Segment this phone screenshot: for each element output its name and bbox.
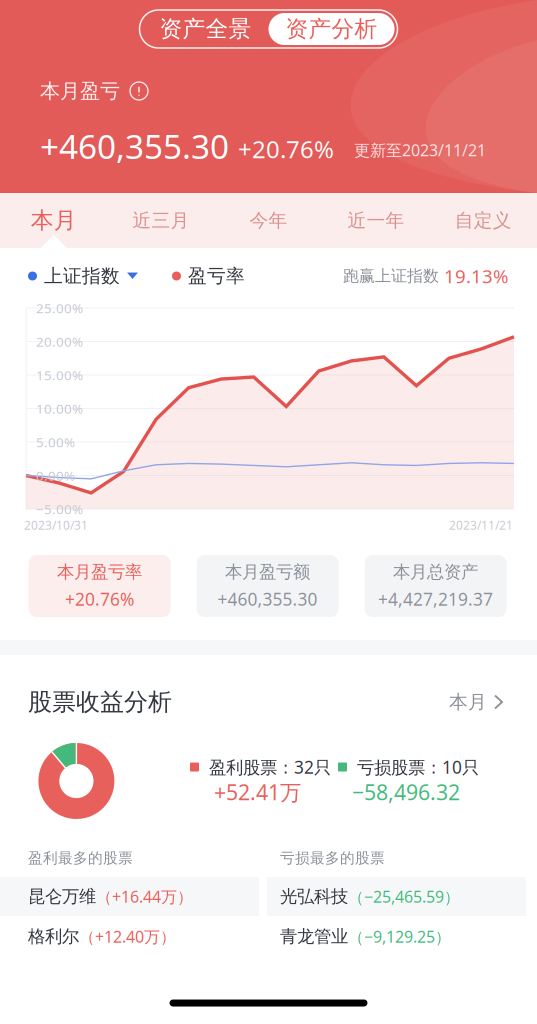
button[interactable]: 资产分析 xyxy=(268,13,394,45)
staticText: 本月 xyxy=(31,207,77,234)
button[interactable]: 本月盈亏率 xyxy=(29,555,171,617)
staticText: 昆仑万维 xyxy=(28,886,96,907)
button[interactable]: 光弘科技 xyxy=(267,877,526,916)
staticText: +20.76% xyxy=(65,588,134,611)
staticText: 本月盈亏 xyxy=(40,79,120,103)
button[interactable]: 上证指数 xyxy=(28,264,138,287)
staticText: 本月总资产 xyxy=(393,561,478,583)
staticText: 20.00% xyxy=(36,333,83,350)
staticText: 盈亏率 xyxy=(188,264,245,287)
staticText: 盈利股票：32只 xyxy=(199,755,331,778)
staticText: +4,427,219.37 xyxy=(378,588,493,611)
staticText: （+12.40万） xyxy=(79,926,176,947)
staticText: 股票收益分析 xyxy=(28,687,172,717)
staticText: +460,355.30 xyxy=(40,124,229,168)
staticText: 10.00% xyxy=(36,400,83,417)
button[interactable]: 自定义 xyxy=(430,193,537,248)
staticText: 25.00% xyxy=(36,299,83,317)
staticText: 光弘科技 xyxy=(280,886,348,907)
staticText: 2023/11/21 xyxy=(449,517,513,533)
staticText: +460,355.30 xyxy=(218,588,318,611)
staticText: 跑赢上证指数 xyxy=(343,266,439,286)
staticText: 5.00% xyxy=(36,433,75,451)
button[interactable]: 近一年 xyxy=(322,193,430,248)
staticText: 盈利最多的股票 xyxy=(28,849,133,867)
staticText: 近三月 xyxy=(133,209,190,232)
button[interactable]: 本月盈亏额 xyxy=(197,555,339,617)
staticText: 格利尔 xyxy=(28,926,79,947)
staticText: 更新至2023/11/21 xyxy=(354,139,486,161)
staticText: 2023/10/31 xyxy=(24,517,88,533)
staticText: 自定义 xyxy=(455,209,512,232)
button[interactable]: 昆仑万维 xyxy=(0,877,259,916)
staticText: 0.00% xyxy=(36,467,75,484)
staticText: 资产分析 xyxy=(285,15,377,43)
staticText: 本月盈亏额 xyxy=(225,561,310,583)
button[interactable]: 本月 xyxy=(0,193,107,248)
button[interactable]: 格利尔 xyxy=(0,917,259,956)
staticText: 15.00% xyxy=(36,366,83,384)
staticText: 亏损最多的股票 xyxy=(280,849,385,867)
staticText: −58,496.32 xyxy=(352,778,460,806)
button[interactable]: 近三月 xyxy=(107,193,215,248)
button[interactable]: 本月 xyxy=(364,686,504,718)
staticText: （−9,129.25） xyxy=(348,926,451,947)
staticText: 19.13% xyxy=(439,264,509,288)
staticText: 上证指数 xyxy=(44,264,120,287)
staticText: （+16.44万） xyxy=(96,886,193,907)
staticText: +52.41万 xyxy=(214,778,301,806)
button[interactable]: 青龙管业 xyxy=(267,917,526,956)
staticText: 资产全景 xyxy=(159,15,251,43)
staticText: （−25,465.59） xyxy=(348,886,460,907)
button[interactable]: 本月总资产 xyxy=(365,555,507,617)
staticText: 今年 xyxy=(249,209,287,232)
staticText: +20.76% xyxy=(238,133,334,165)
button[interactable]: 今年 xyxy=(215,193,322,248)
staticText: 本月盈亏率 xyxy=(57,561,142,583)
staticText: 亏损股票：10只 xyxy=(347,755,479,778)
staticText: 近一年 xyxy=(347,209,404,232)
button[interactable]: 资产全景 xyxy=(142,13,268,45)
staticText: 青龙管业 xyxy=(280,926,348,947)
staticText: 本月 xyxy=(449,690,487,713)
staticText: −5.00% xyxy=(36,500,83,518)
